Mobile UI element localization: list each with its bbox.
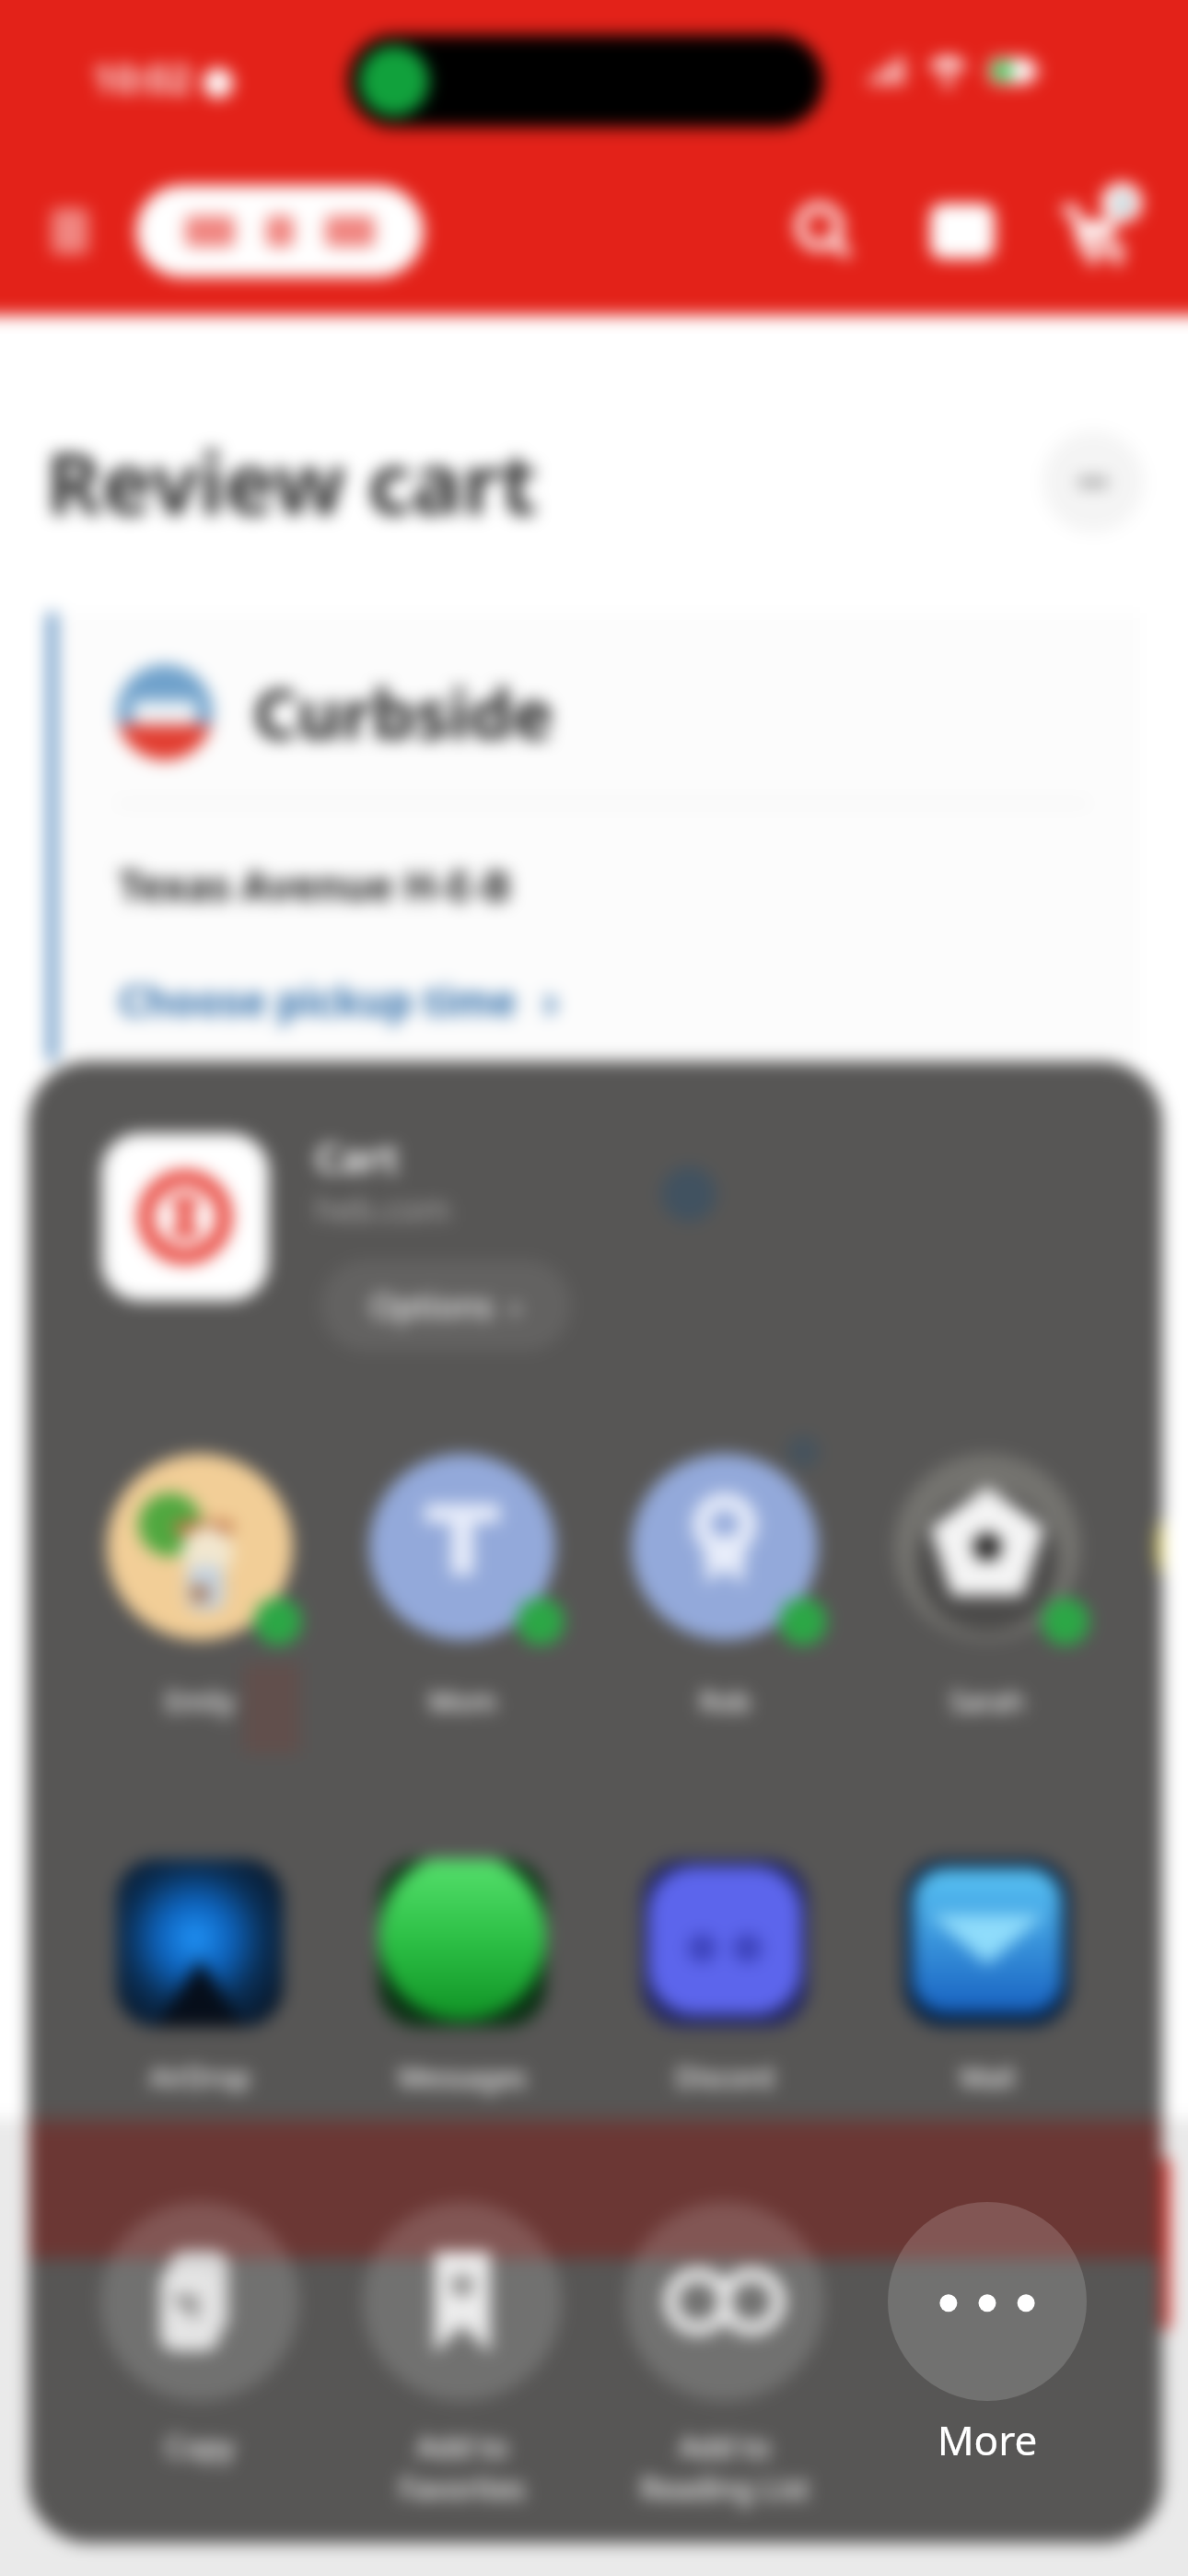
- staticText: Add to Reading List: [625, 2427, 824, 2508]
- staticText: Messages: [379, 2058, 546, 2096]
- button[interactable]: Choose pickup time: [119, 970, 559, 1030]
- staticText: Choose pickup time: [119, 973, 517, 1028]
- button[interactable]: Options: [320, 1260, 571, 1351]
- staticText: Cart: [315, 1130, 399, 1185]
- button[interactable]: Copy: [100, 2202, 299, 2506]
- staticText: Mom: [369, 1682, 555, 1720]
- button[interactable]: Search: [785, 192, 864, 271]
- staticText: Options: [370, 1283, 494, 1329]
- staticText: heb.com: [315, 1187, 451, 1232]
- button[interactable]: Cart: [1057, 192, 1136, 271]
- button[interactable]: Add to Reading List: [625, 2202, 824, 2506]
- button[interactable]: Sarah: [894, 1454, 1080, 1758]
- button[interactable]: More options: [1042, 431, 1144, 533]
- button[interactable]: H-E-B app icon: [101, 1133, 269, 1301]
- button[interactable]: Mom: [369, 1454, 555, 1758]
- staticText: Discord: [641, 2058, 809, 2096]
- staticText: Rob: [632, 1682, 818, 1720]
- staticText: Add to Favorites: [363, 2427, 562, 2508]
- button[interactable]: More: [888, 2202, 1087, 2478]
- staticText: Emily: [107, 1682, 293, 1720]
- staticText: More: [888, 2412, 1087, 2467]
- button[interactable]: Mail: [903, 1859, 1071, 2136]
- button[interactable]: H-E-B home: [136, 185, 424, 277]
- staticText: 3: [1115, 187, 1129, 219]
- button[interactable]: Rob: [632, 1454, 818, 1758]
- button[interactable]: AirDrop: [116, 1859, 284, 2136]
- button[interactable]: Discord: [641, 1859, 809, 2136]
- staticText: Copy: [100, 2427, 299, 2467]
- staticText: •••: [1078, 464, 1108, 499]
- staticText: Review cart: [46, 424, 537, 539]
- staticText: Mail: [903, 2058, 1071, 2096]
- button[interactable]: Deals: [923, 192, 1002, 271]
- staticText: Texas Avenue H-E-B: [119, 858, 511, 913]
- button[interactable]: Menu: [52, 208, 88, 254]
- staticText: ›: [510, 1283, 521, 1329]
- staticText: Sarah: [894, 1682, 1080, 1720]
- button[interactable]: Add to Favorites: [363, 2202, 562, 2506]
- button[interactable]: Emily: [107, 1454, 293, 1758]
- staticText: AirDrop: [116, 2058, 284, 2096]
- staticText: ›: [542, 970, 559, 1030]
- staticText: Curbside: [253, 666, 553, 759]
- button[interactable]: Messages: [379, 1859, 546, 2136]
- staticText: 10:02 ●: [92, 52, 236, 104]
